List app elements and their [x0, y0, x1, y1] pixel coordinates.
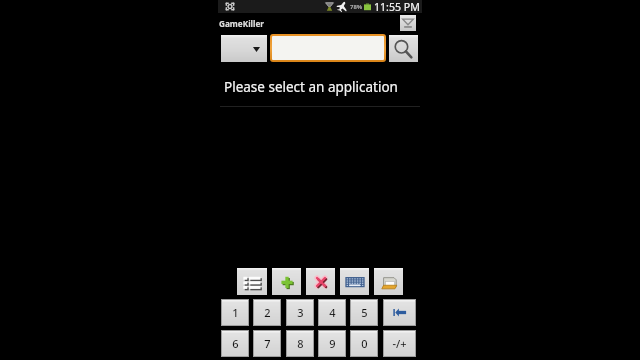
button[interactable]: Process list [237, 268, 267, 295]
staticText: 11:55 PM [374, 0, 420, 13]
button[interactable]: 7 [254, 331, 280, 356]
staticText: 8 [297, 336, 304, 351]
staticText: -/+ [392, 336, 407, 351]
button[interactable]: 2 [254, 300, 280, 325]
button[interactable]: 4 [319, 300, 345, 325]
button[interactable]: 5 [351, 300, 377, 325]
staticText: 9 [329, 336, 336, 351]
other: Backspace [392, 305, 407, 320]
button[interactable]: Add value [272, 268, 301, 295]
button[interactable]: 3 [287, 300, 313, 325]
staticText: 0 [361, 336, 368, 351]
staticText: 6 [232, 336, 239, 351]
button[interactable]: Keyboard [340, 268, 369, 295]
button[interactable]: Delete value [306, 268, 335, 295]
staticText: 4 [329, 305, 336, 320]
staticText: Please select an application [224, 78, 398, 96]
button[interactable]: 6 [222, 331, 248, 356]
staticText: 2 [264, 305, 271, 320]
staticText: 5 [361, 305, 368, 320]
button[interactable]: 9 [319, 331, 345, 356]
button[interactable]: 0 [351, 331, 377, 356]
button[interactable]: 8 [287, 331, 313, 356]
staticText: 1 [232, 305, 239, 320]
button[interactable]: Select application [221, 35, 267, 62]
staticText: 78% [350, 3, 363, 11]
button[interactable]: Backspace [384, 300, 415, 325]
button[interactable]: -/+ [384, 331, 415, 356]
button[interactable]: 1 [222, 300, 248, 325]
button[interactable]: Open file [374, 268, 403, 295]
staticText: 3 [297, 305, 304, 320]
button[interactable]: Search [389, 35, 418, 62]
button[interactable]: Collapse window [400, 15, 416, 31]
staticText: GameKiller [219, 18, 265, 29]
staticText: 7 [264, 336, 271, 351]
